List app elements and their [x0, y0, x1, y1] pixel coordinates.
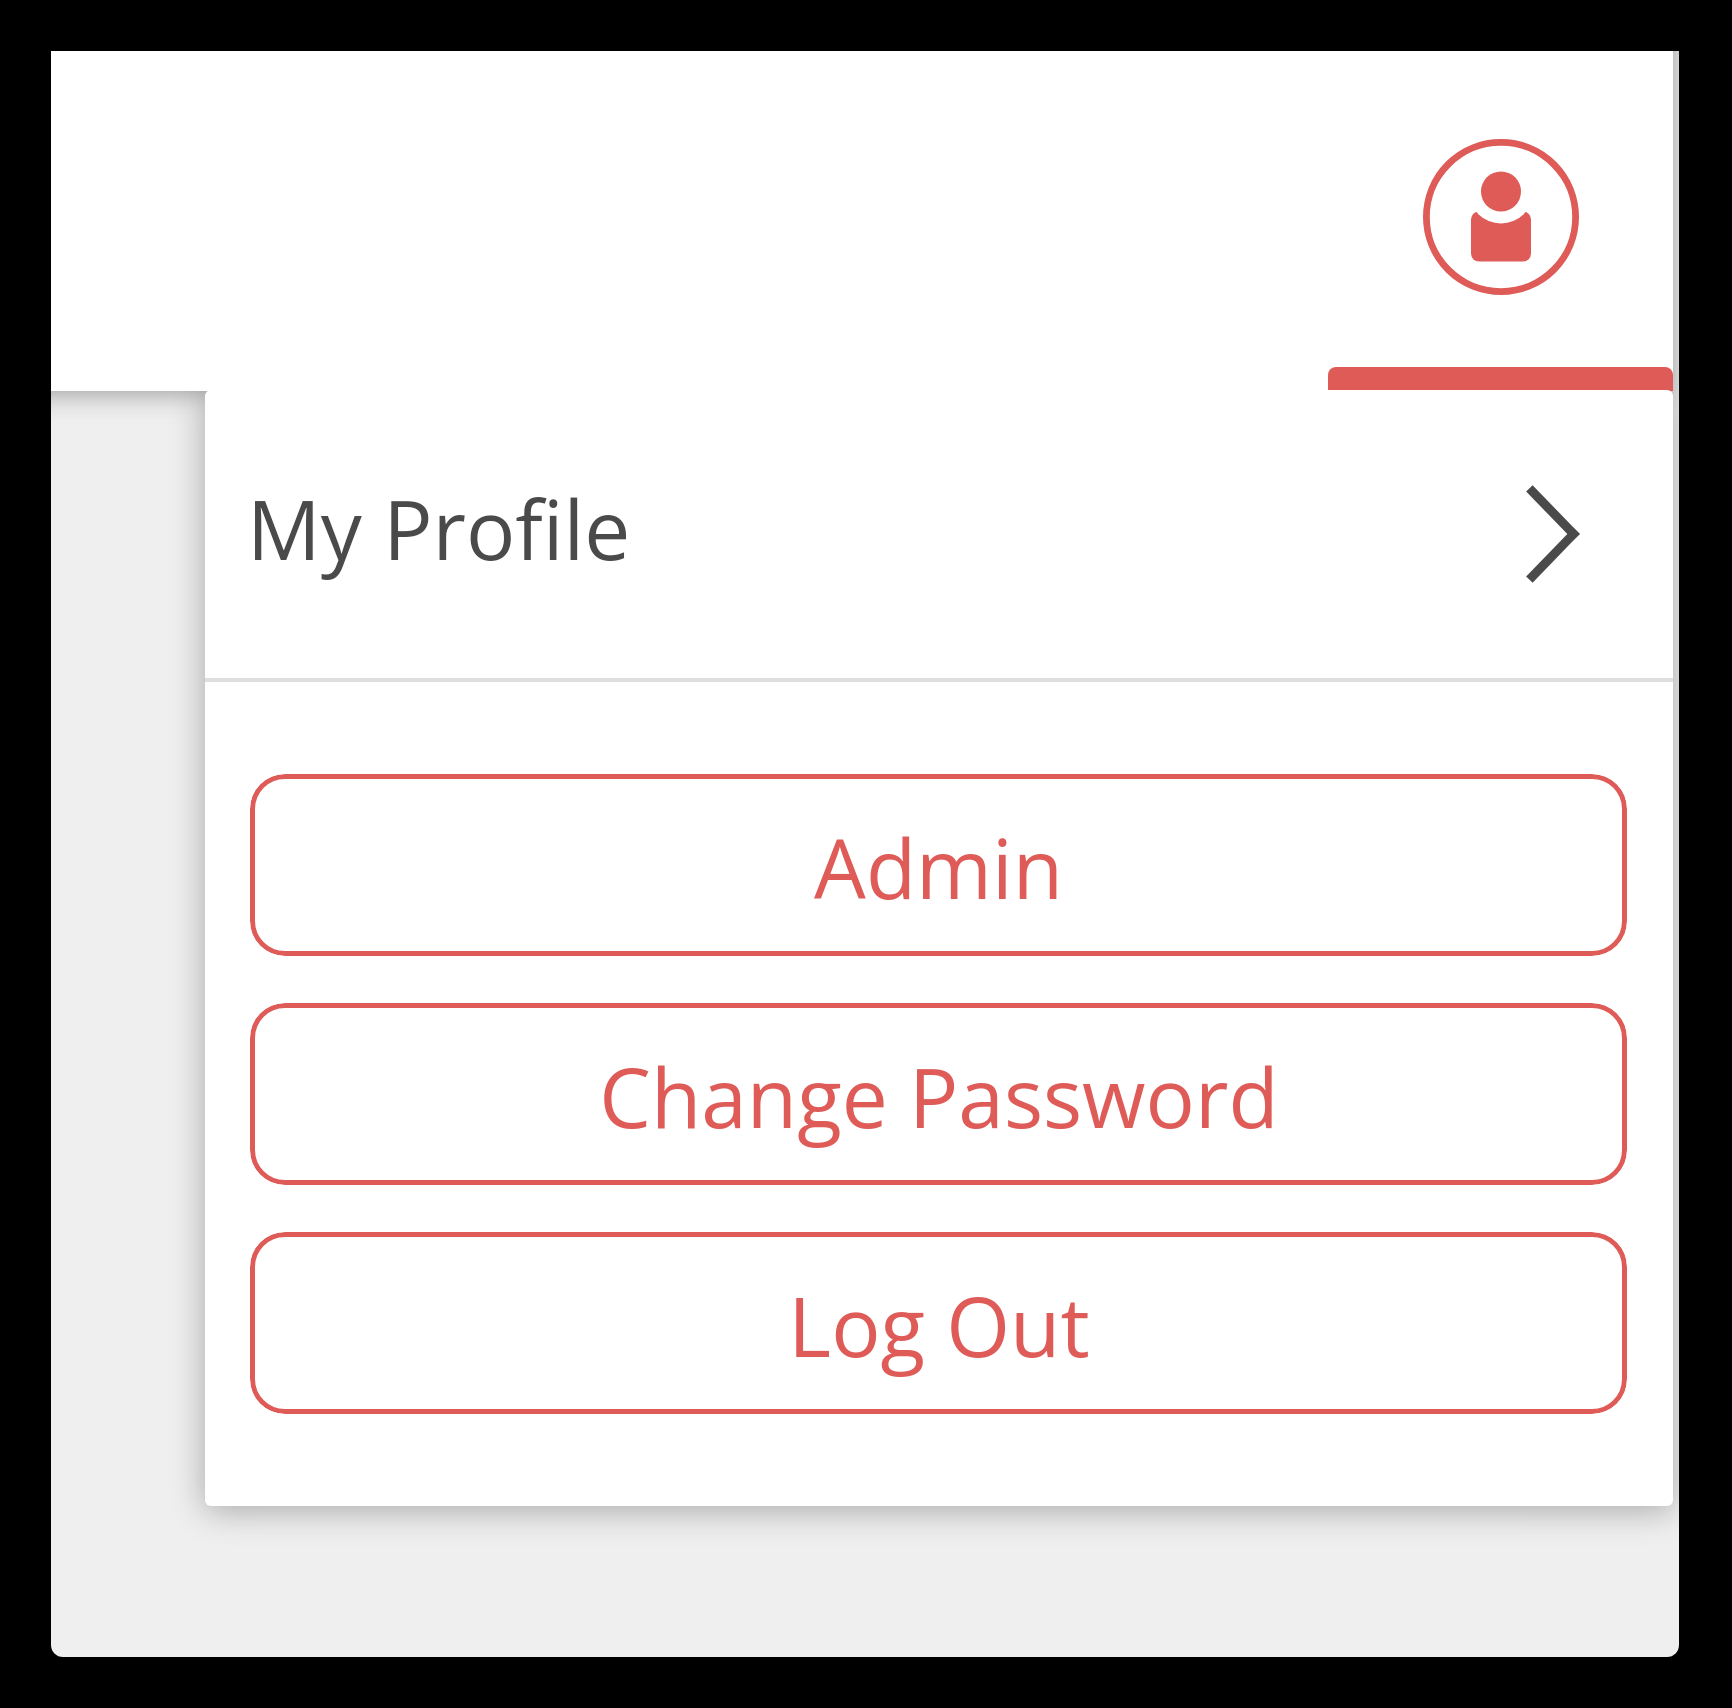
button[interactable]: Change Password — [250, 1003, 1627, 1185]
staticText: Log Out — [788, 1269, 1090, 1381]
staticText: Admin — [814, 811, 1063, 923]
button[interactable]: Log Out — [250, 1232, 1627, 1414]
button[interactable]: Admin — [250, 774, 1627, 956]
button[interactable]: My Profile — [205, 390, 1673, 678]
staticText: My Profile — [247, 472, 631, 584]
button[interactable]: Account — [1423, 139, 1579, 295]
staticText: Change Password — [599, 1040, 1279, 1152]
